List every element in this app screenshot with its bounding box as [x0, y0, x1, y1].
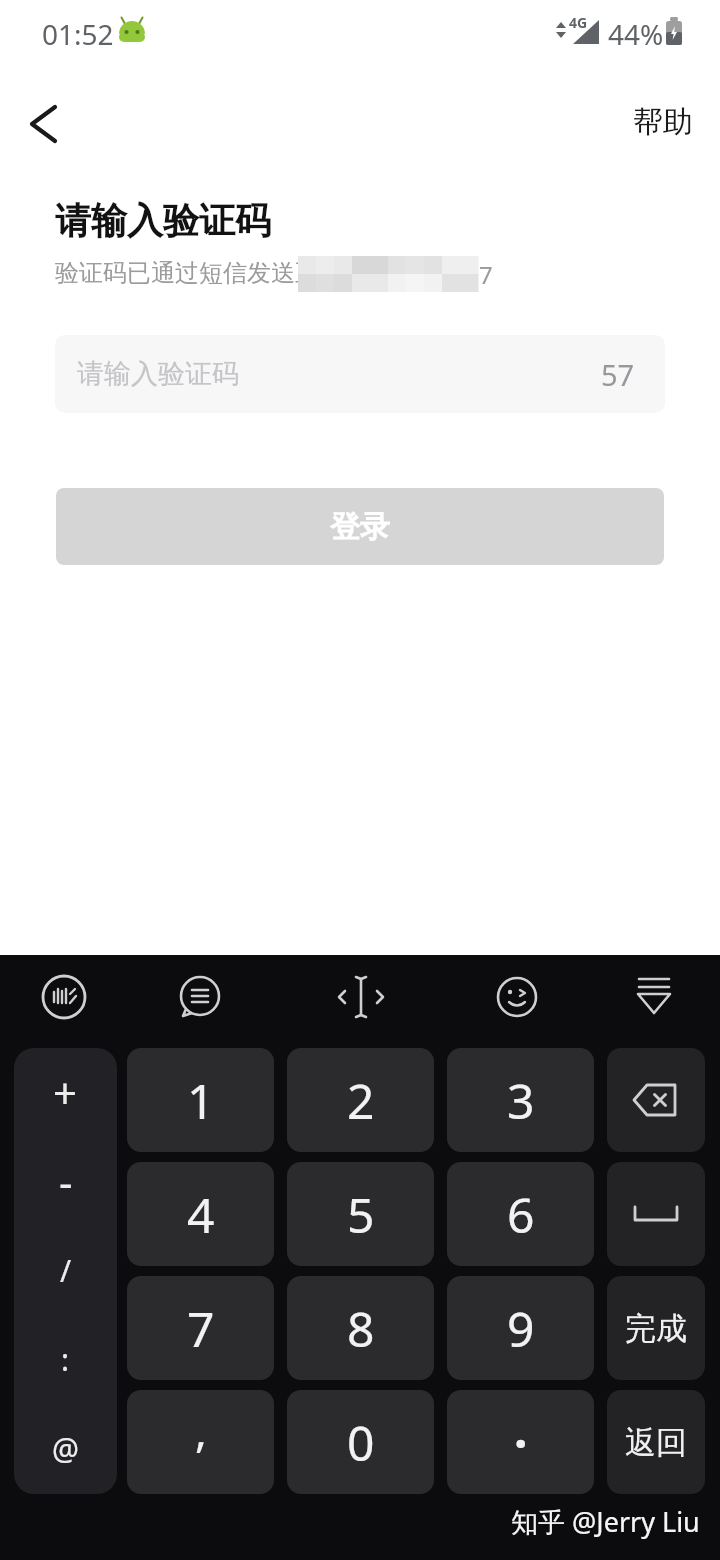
button[interactable]	[172, 969, 228, 1025]
staticText: 7	[479, 258, 493, 291]
button[interactable]: ,	[127, 1390, 274, 1494]
staticText: 知乎 @Jerry Liu	[511, 1503, 700, 1540]
button[interactable]: /	[14, 1226, 117, 1315]
button[interactable]: -	[14, 1137, 117, 1226]
button[interactable]: :	[14, 1315, 117, 1404]
staticText: 5	[347, 1182, 375, 1247]
staticText: +	[53, 1064, 78, 1121]
staticText: 8	[347, 1296, 375, 1361]
button[interactable]	[36, 969, 92, 1025]
staticText: 4	[187, 1182, 215, 1247]
staticText: 57	[601, 355, 635, 394]
button[interactable]: 4	[127, 1162, 274, 1266]
button[interactable]: 返回	[607, 1390, 705, 1494]
button[interactable]: 7	[127, 1276, 274, 1380]
staticText: 7	[187, 1296, 215, 1361]
staticText: -	[59, 1153, 73, 1210]
staticText: 0	[347, 1410, 375, 1475]
button[interactable]: 1	[127, 1048, 274, 1152]
button[interactable]	[14, 96, 70, 152]
button[interactable]	[607, 1162, 705, 1266]
staticText: 6	[507, 1182, 535, 1247]
staticText: 3	[507, 1068, 535, 1133]
staticText: 完成	[625, 1309, 687, 1348]
button[interactable]	[626, 969, 682, 1025]
button[interactable]	[333, 969, 389, 1025]
staticText: :	[61, 1339, 70, 1380]
button[interactable]: @	[14, 1404, 117, 1493]
button[interactable]: 0	[287, 1390, 434, 1494]
button[interactable]	[489, 969, 545, 1025]
staticText: @	[52, 1428, 79, 1469]
staticText: ·	[514, 1410, 528, 1475]
button[interactable]: 8	[287, 1276, 434, 1380]
button[interactable]: 2	[287, 1048, 434, 1152]
staticText: 登录	[330, 508, 390, 546]
button[interactable]: 3	[447, 1048, 594, 1152]
staticText: 9	[507, 1296, 535, 1361]
button[interactable]: 完成	[607, 1276, 705, 1380]
staticText: 2	[347, 1068, 375, 1133]
button[interactable]: 请输入验证码	[55, 335, 665, 413]
button[interactable]	[607, 1048, 705, 1152]
staticText: 帮助	[633, 103, 693, 141]
staticText: 返回	[625, 1423, 687, 1462]
button[interactable]: 6	[447, 1162, 594, 1266]
button[interactable]: ·	[447, 1390, 594, 1494]
staticText: 验证码已通过短信发送至	[55, 258, 319, 288]
staticText: ,	[195, 1400, 207, 1460]
button[interactable]: 登录	[56, 488, 664, 565]
button[interactable]: 帮助	[620, 96, 706, 148]
button[interactable]: 9	[447, 1276, 594, 1380]
staticText: 请输入验证码	[55, 198, 271, 243]
staticText: 请输入验证码	[77, 357, 239, 391]
staticText: 44%	[608, 15, 664, 53]
staticText: 1	[187, 1068, 215, 1133]
staticText: 01:52	[42, 15, 114, 53]
button[interactable]: +	[14, 1048, 117, 1137]
staticText: /	[60, 1250, 72, 1291]
button[interactable]: 5	[287, 1162, 434, 1266]
staticText: 4G	[569, 13, 588, 32]
